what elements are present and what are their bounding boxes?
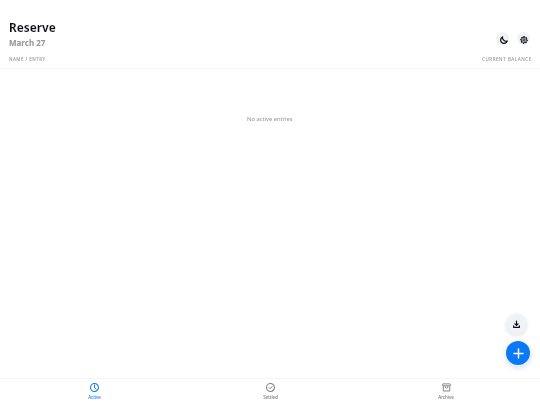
button[interactable]: Add entry (506, 341, 530, 365)
staticText: NAME / ENTRY (9, 56, 46, 62)
staticText: March 27 (9, 37, 46, 48)
staticText: Settled (263, 394, 278, 400)
button[interactable]: Active (6, 379, 182, 405)
staticText: Reserve (9, 19, 56, 35)
staticText: Active (88, 394, 101, 400)
staticText: CURRENT BALANCE (482, 56, 532, 62)
staticText: Archive (438, 394, 454, 400)
button[interactable]: Archive (358, 379, 534, 405)
button[interactable]: Toggle dark mode (496, 32, 509, 45)
button[interactable]: Download (507, 314, 527, 334)
button[interactable]: Settled (182, 379, 358, 405)
staticText: No active entries (247, 115, 293, 123)
button[interactable]: Settings (517, 32, 530, 45)
